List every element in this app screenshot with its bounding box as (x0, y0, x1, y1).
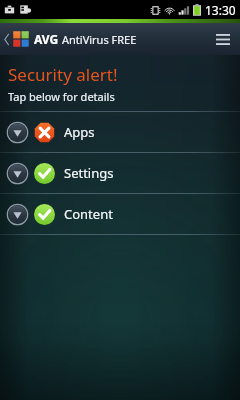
button[interactable]: Content (0, 194, 240, 234)
button[interactable]: AVG (0, 26, 143, 52)
staticText: Apps (64, 123, 95, 141)
staticText: Tap below for details (8, 89, 115, 104)
staticText: Settings (64, 164, 114, 182)
staticText: 13:30 (205, 2, 236, 18)
staticText: AVG (34, 31, 59, 47)
staticText: AntiVirus FREE (62, 32, 137, 47)
staticText: Content (64, 205, 113, 223)
staticText: Security alert! (8, 63, 118, 86)
button[interactable]: Settings (0, 153, 240, 193)
button[interactable]: Menu (210, 26, 236, 52)
button[interactable]: Apps (0, 112, 240, 152)
